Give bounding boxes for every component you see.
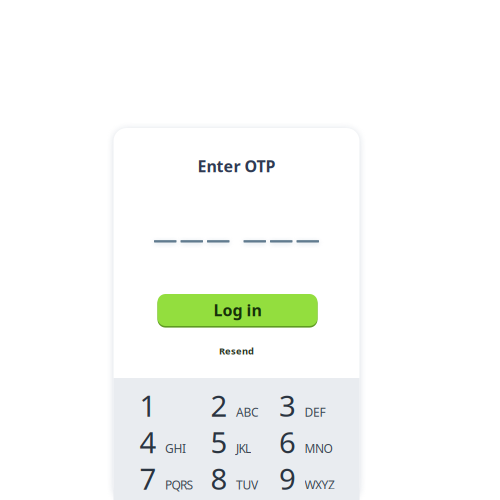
button[interactable]: Resend bbox=[113, 345, 359, 357]
button[interactable]: 3 bbox=[279, 386, 359, 422]
staticText: 6 bbox=[279, 422, 296, 461]
staticText: 9 bbox=[279, 459, 296, 498]
staticText: PQRS bbox=[165, 477, 193, 493]
staticText: 8 bbox=[210, 459, 227, 498]
staticText: WXYZ bbox=[304, 477, 335, 493]
button[interactable]: OTP code field bbox=[113, 232, 359, 250]
button[interactable]: 6 bbox=[279, 422, 359, 459]
staticText: Log in bbox=[213, 299, 261, 321]
button[interactable]: 9 bbox=[279, 459, 359, 495]
staticText: JKL bbox=[236, 440, 251, 456]
staticText: 4 bbox=[139, 422, 156, 461]
staticText: ABC bbox=[236, 404, 259, 420]
staticText: 1 bbox=[139, 386, 156, 425]
staticText: MNO bbox=[304, 440, 332, 456]
button[interactable]: 2 bbox=[210, 386, 279, 422]
staticText: 5 bbox=[210, 422, 227, 461]
button[interactable]: 7 bbox=[139, 459, 210, 495]
button[interactable]: Log in bbox=[157, 294, 317, 326]
staticText: 7 bbox=[139, 459, 156, 498]
staticText: DEF bbox=[304, 404, 325, 420]
staticText: 2 bbox=[210, 386, 227, 425]
staticText: GHI bbox=[165, 440, 186, 456]
staticText: TUV bbox=[236, 477, 258, 493]
button[interactable]: 1 bbox=[139, 386, 210, 422]
staticText: Enter OTP bbox=[197, 155, 275, 177]
staticText: 3 bbox=[279, 386, 296, 425]
button[interactable]: 5 bbox=[210, 422, 279, 459]
button[interactable]: 4 bbox=[139, 422, 210, 459]
button[interactable]: 8 bbox=[210, 459, 279, 495]
staticText: Resend bbox=[219, 345, 254, 357]
